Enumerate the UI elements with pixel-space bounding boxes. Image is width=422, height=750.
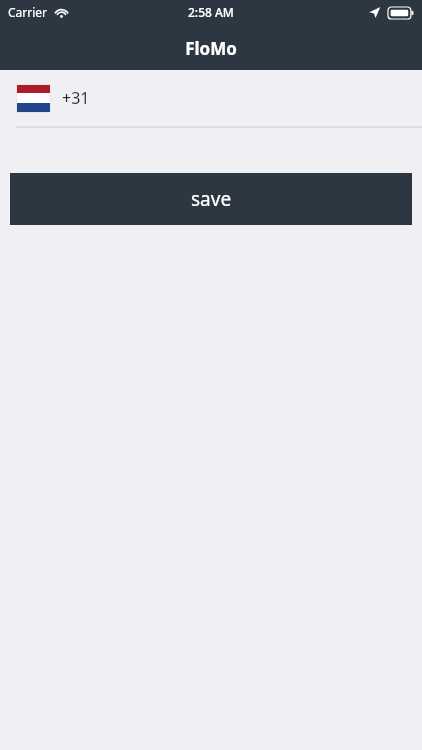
staticText: FloMo [185,37,237,60]
button[interactable]: +31 [0,70,422,126]
staticText: 2:58 AM [188,4,234,20]
staticText: +31 [62,87,90,109]
staticText: Carrier [8,4,48,20]
button[interactable]: save [10,173,412,225]
staticText: save [191,186,232,212]
other: Location [368,6,381,19]
